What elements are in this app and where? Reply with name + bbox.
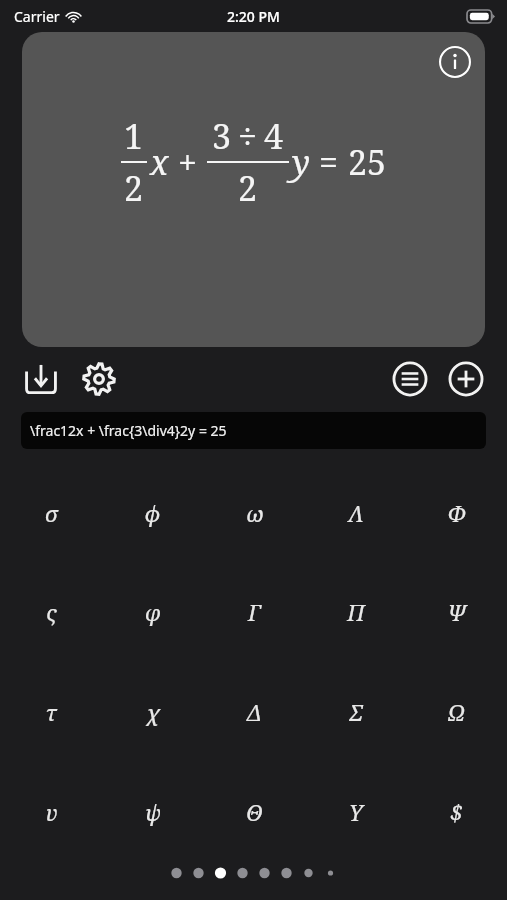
button[interactable]: ω [204,463,305,562]
staticText: Ψ [447,597,467,627]
staticText: Λ [348,498,364,528]
staticText: ω [246,498,264,528]
staticText: ψ [145,797,161,827]
staticText: 2:20 PM [227,7,280,26]
staticText: Ω [448,697,465,727]
button[interactable]: Π [305,562,406,662]
button[interactable]: τ [0,662,102,762]
button[interactable]: Ψ [406,562,507,662]
staticText: $ [450,797,463,827]
button[interactable]: $ [406,762,507,862]
button[interactable]: Info [433,40,477,84]
staticText: 2 [238,165,258,211]
button[interactable]: Settings [80,360,118,398]
button[interactable]: χ [102,662,204,762]
button[interactable]: Add [447,360,485,398]
staticText: τ [45,697,57,727]
button[interactable]: Ω [406,662,507,762]
staticText: Δ [247,697,262,727]
button[interactable]: Σ [305,662,406,762]
button[interactable]: ϕ [102,463,204,562]
staticText: υ [45,797,58,827]
button[interactable]: ς [0,562,102,662]
staticText: \frac12x + \frac{3\div4}2y = 25 [30,421,227,440]
staticText: 4 [264,113,284,159]
staticText: Carrier [14,7,60,26]
button[interactable]: Λ [305,463,406,562]
button[interactable]: Θ [204,762,305,862]
staticText: Γ [248,597,261,627]
staticText: σ [45,498,58,528]
staticText: y [292,139,310,185]
button[interactable]: Menu [391,360,429,398]
button[interactable]: υ [0,762,102,862]
button[interactable]: Save [22,360,60,398]
staticText: + [178,139,198,185]
staticText: Σ [350,697,362,727]
button[interactable]: φ [102,562,204,662]
staticText: ÷ [238,113,258,159]
button[interactable]: Υ [305,762,406,862]
button[interactable]: σ [0,463,102,562]
button[interactable]: \frac12x + \frac{3\div4}2y = 25 [21,412,486,449]
staticText: 3 [212,113,232,159]
staticText: φ [145,597,161,627]
button[interactable]: ψ [102,762,204,862]
staticText: ς [46,597,57,627]
button[interactable]: Γ [204,562,305,662]
staticText: 1 [124,113,144,159]
staticText: Φ [447,498,466,528]
staticText: 25 [348,139,387,185]
staticText: Π [347,597,365,627]
staticText: χ [147,697,160,727]
staticText: Θ [246,797,263,827]
button[interactable]: Φ [406,463,507,562]
button[interactable]: Δ [204,662,305,762]
staticText: ϕ [145,498,161,528]
staticText: 2 [124,165,144,211]
staticText: Υ [349,797,363,827]
staticText: = [319,139,339,185]
staticText: x [150,139,169,185]
